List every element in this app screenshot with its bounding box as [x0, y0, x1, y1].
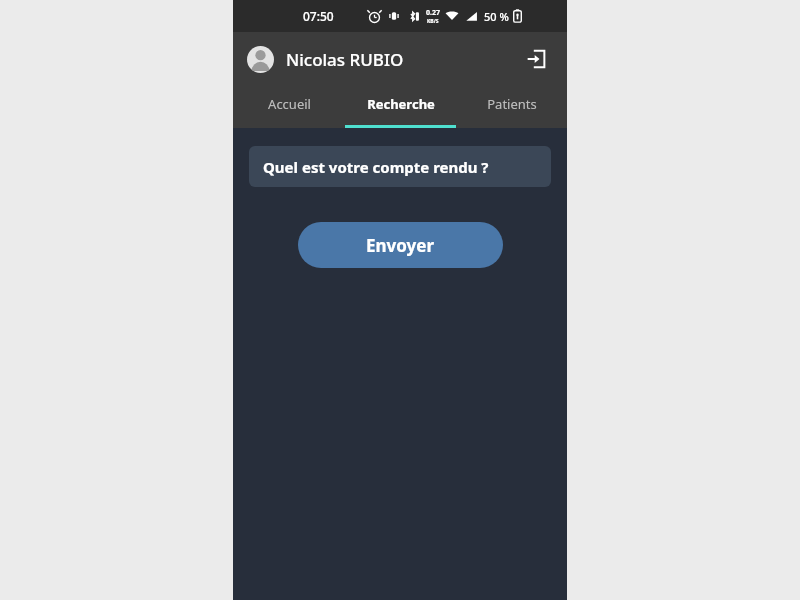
staticText: 50 %	[484, 9, 509, 24]
staticText: Recherche	[367, 95, 435, 113]
button[interactable]: Accueil	[233, 86, 345, 128]
staticText: Quel est votre compte rendu ?	[263, 157, 489, 177]
button[interactable]: Quel est votre compte rendu ?	[249, 146, 551, 187]
button[interactable]: Se déconnecter	[519, 42, 553, 76]
staticText: Patients	[487, 95, 537, 113]
button[interactable]: Profil	[247, 46, 274, 73]
staticText: 07:50	[303, 8, 334, 24]
staticText: Envoyer	[366, 234, 435, 257]
staticText: 0.27	[426, 8, 440, 18]
staticText: KB/S	[427, 18, 439, 25]
button[interactable]: Patients	[456, 86, 567, 128]
button[interactable]: Recherche	[345, 86, 456, 128]
staticText: Nicolas RUBIO	[286, 48, 404, 71]
staticText: Accueil	[268, 95, 311, 113]
button[interactable]: Envoyer	[298, 222, 503, 268]
